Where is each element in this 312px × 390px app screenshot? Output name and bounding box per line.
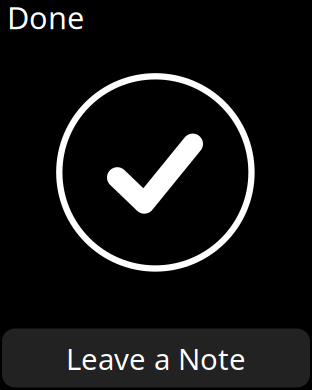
staticText: Leave a Note — [66, 339, 246, 378]
button[interactable]: Leave a Note — [2, 328, 310, 387]
staticText: Done — [7, 0, 84, 38]
